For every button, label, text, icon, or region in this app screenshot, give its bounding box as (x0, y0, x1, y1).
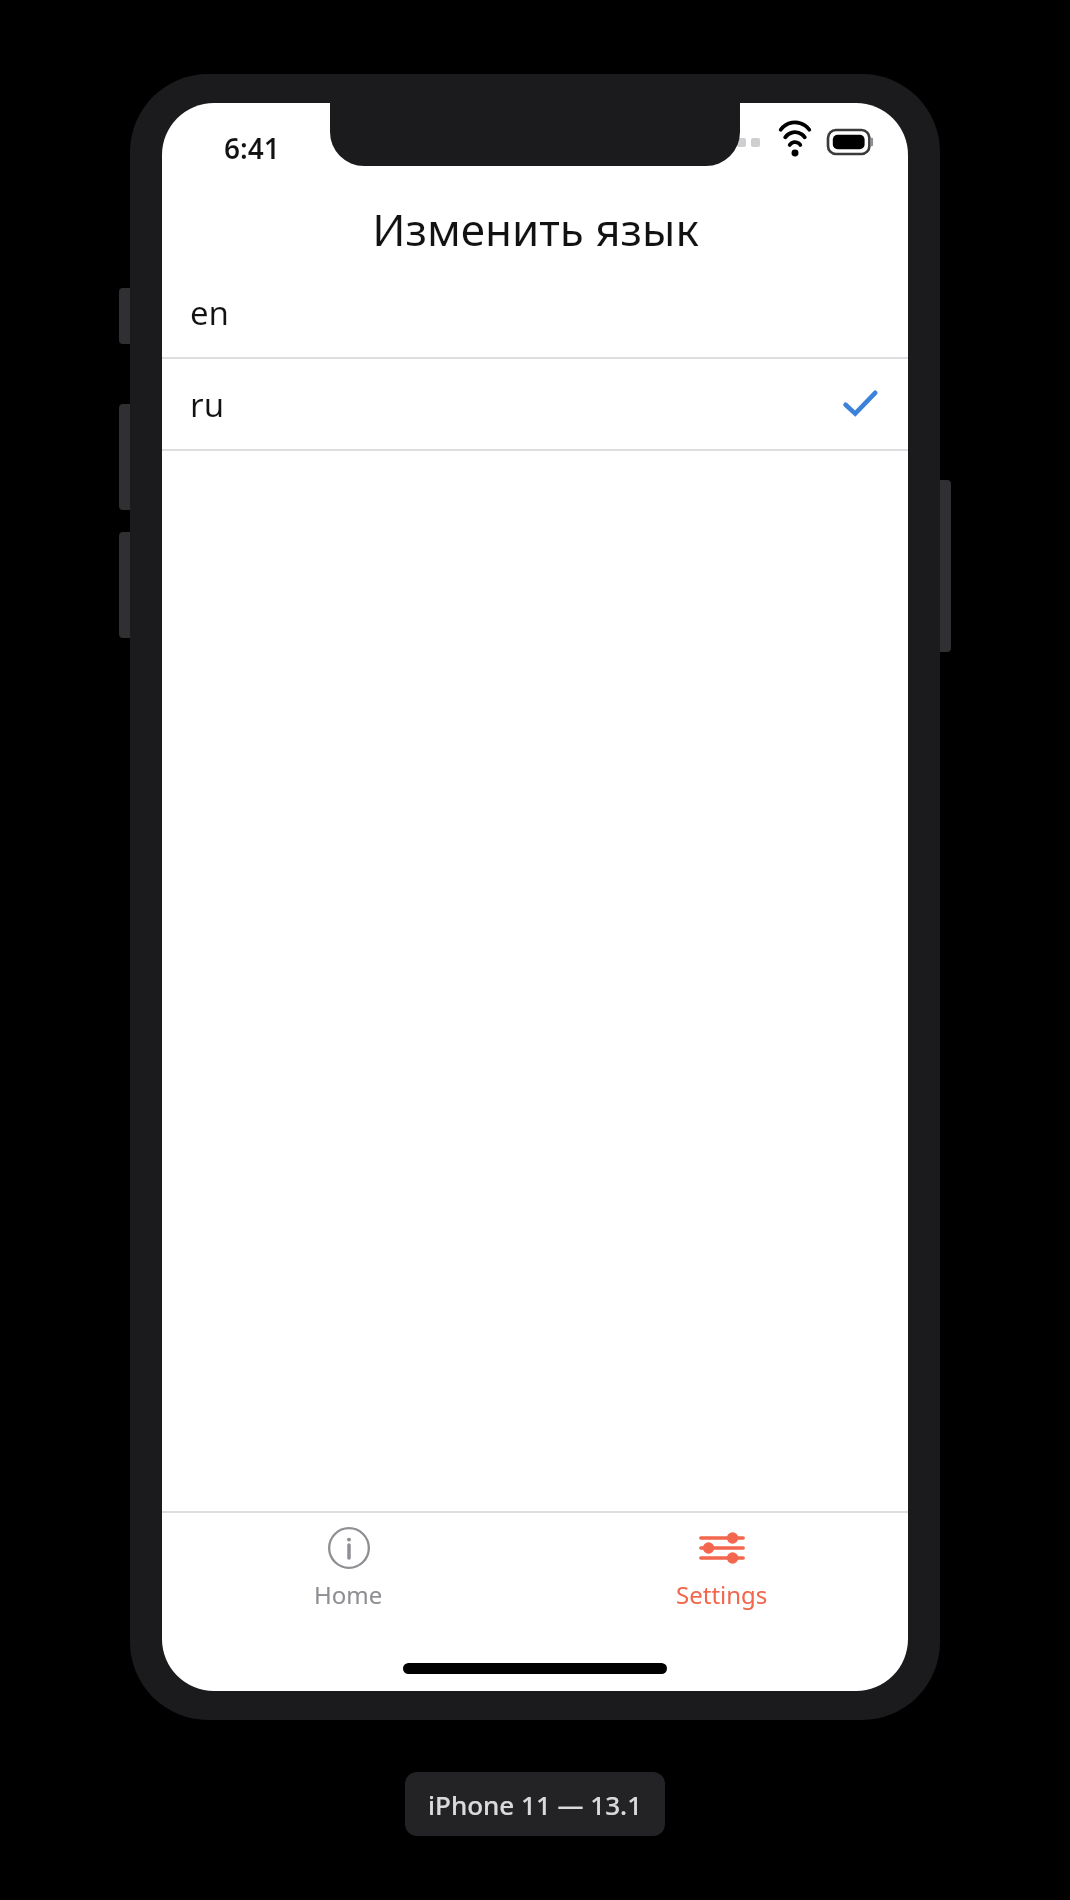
staticText: Изменить язык (372, 199, 699, 259)
staticText: Home (314, 1578, 383, 1611)
button[interactable]: Home (162, 1513, 535, 1625)
button[interactable]: Settings (535, 1513, 908, 1625)
button[interactable]: en (162, 267, 908, 357)
staticText: ru (190, 382, 225, 427)
staticText: en (190, 290, 230, 335)
staticText: iPhone 11 — 13.1 (428, 1787, 643, 1822)
button[interactable]: ru (162, 359, 908, 449)
staticText: Settings (676, 1578, 768, 1611)
staticText: 6:41 (224, 129, 280, 167)
